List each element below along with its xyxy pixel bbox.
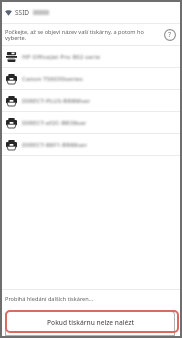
staticText: HP OfficeJet Pro 802 serie	[22, 53, 101, 61]
button[interactable]: HP OfficeJet Pro 802 serie	[2, 46, 180, 67]
staticText: DIRECT-88F1-BR88ser	[22, 141, 88, 149]
staticText: DIRECT-ef2C-BR38ser	[22, 119, 87, 127]
button[interactable]: Help	[159, 24, 180, 45]
button[interactable]: DIRECT-PLUS-BR8Mser	[2, 90, 180, 111]
staticText: Probíhá hledání dalších tiskáren...	[5, 295, 94, 303]
staticText: Počkejte, až se objeví název vaší tiskár…	[5, 28, 159, 42]
staticText: DIRECT-PLUS-BR8Mser	[22, 97, 91, 105]
staticText: ?	[168, 30, 172, 40]
staticText: Canon TS6030series	[22, 75, 83, 83]
button[interactable]	[5, 310, 179, 333]
staticText: Pokud tiskárnu nelze nalézt	[47, 318, 134, 327]
button[interactable]: DIRECT-88F1-BR88ser	[2, 134, 180, 155]
button[interactable]: Pokud tiskárnu nelze nalézt	[5, 311, 175, 336]
button[interactable]: Canon TS6030series	[2, 68, 180, 89]
button[interactable]: DIRECT-ef2C-BR38ser	[2, 112, 180, 133]
staticText: SSID	[15, 8, 30, 17]
